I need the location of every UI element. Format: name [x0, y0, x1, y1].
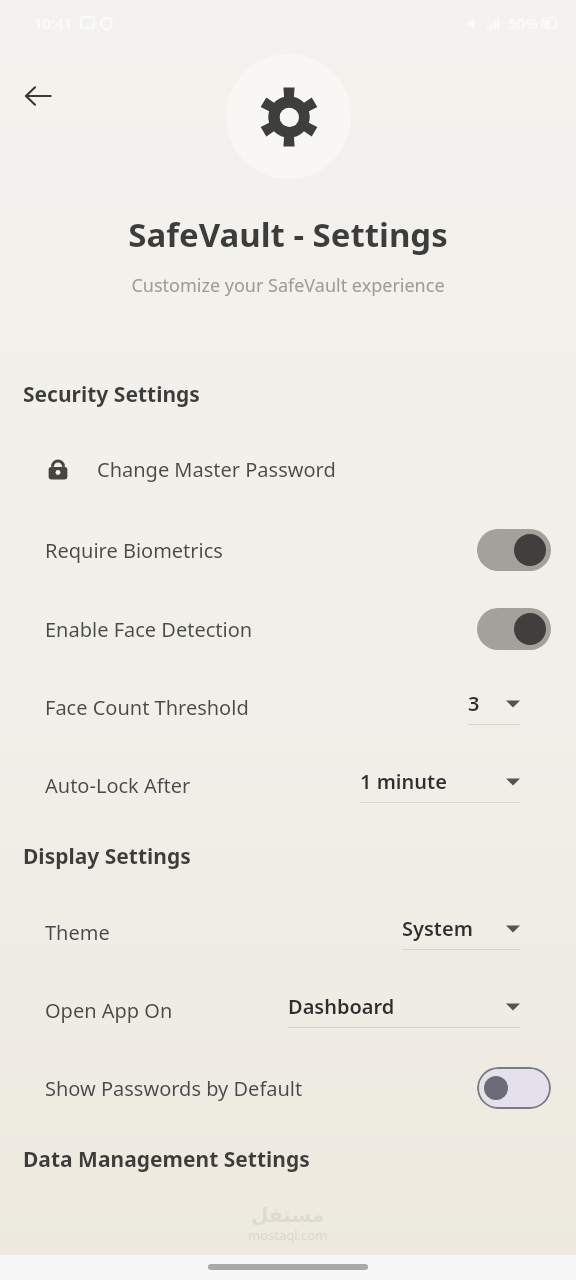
staticText: Theme [45, 919, 110, 946]
staticText: mostaql.com [248, 1226, 328, 1244]
button[interactable]: Auto-Lock After [0, 754, 576, 816]
button[interactable]: Change Master Password [0, 441, 576, 497]
staticText: Change Master Password [97, 456, 336, 483]
button[interactable]: Theme [0, 901, 576, 963]
button[interactable]: Enable Face Detection [0, 598, 576, 660]
button[interactable]: Face Count Threshold [0, 676, 576, 738]
staticText: 3 [468, 690, 480, 717]
button[interactable]: Open App On [0, 979, 576, 1041]
staticText: Dashboard [288, 993, 395, 1020]
staticText: Require Biometrics [45, 537, 223, 564]
staticText: Customize your SafeVault experience [131, 273, 445, 298]
staticText: Data Management Settings [23, 1145, 310, 1174]
staticText: مستقل [251, 1203, 325, 1226]
button[interactable]: Require Biometrics [0, 519, 576, 581]
button[interactable]: Show Passwords by Default [477, 1067, 551, 1109]
button[interactable]: Enable Face Detection [477, 608, 551, 650]
staticText: Enable Face Detection [45, 616, 253, 643]
staticText: Security Settings [23, 380, 200, 409]
staticText: 10:41 [34, 13, 73, 33]
staticText: SafeVault - Settings [128, 212, 448, 257]
staticText: 1 minute [360, 768, 447, 795]
staticText: Face Count Threshold [45, 694, 249, 721]
staticText: 50% [508, 13, 538, 33]
staticText: Show Passwords by Default [45, 1075, 303, 1102]
staticText: Auto-Lock After [45, 772, 191, 799]
staticText: Open App On [45, 997, 173, 1024]
button[interactable]: Require Biometrics [477, 529, 551, 571]
staticText: System [402, 915, 473, 942]
staticText: Display Settings [23, 842, 191, 871]
button[interactable]: Show Passwords by Default [0, 1057, 576, 1119]
button[interactable]: Back [10, 68, 66, 124]
